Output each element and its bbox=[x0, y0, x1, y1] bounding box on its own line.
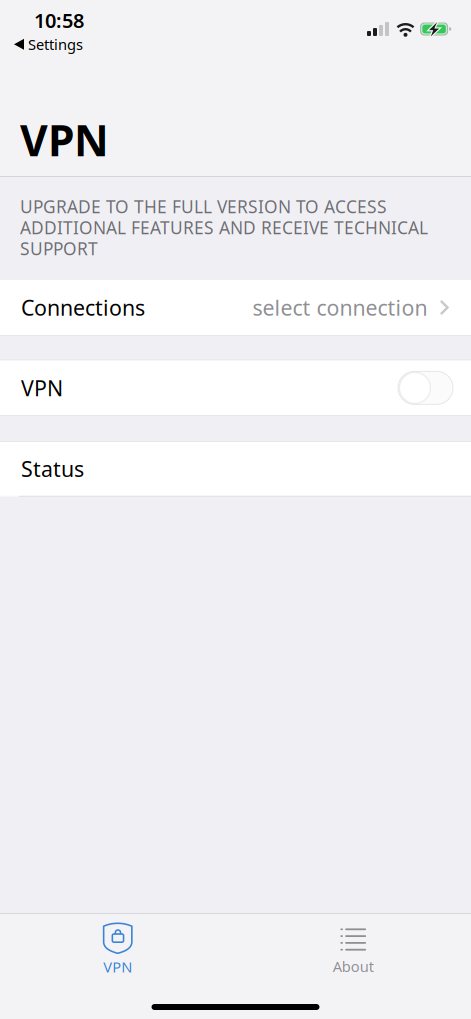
button[interactable]: Settings bbox=[0, 34, 83, 54]
staticText: 10:58 bbox=[34, 7, 84, 34]
staticText: About bbox=[333, 956, 374, 976]
staticText: Status bbox=[21, 455, 84, 483]
button[interactable]: About bbox=[235, 914, 471, 982]
button[interactable]: Connections bbox=[0, 280, 471, 335]
staticText: Settings bbox=[28, 35, 83, 54]
staticText: ADDITIONAL FEATURES AND RECEIVE TECHNICA… bbox=[20, 216, 428, 239]
staticText: VPN bbox=[21, 374, 63, 402]
staticText: VPN bbox=[103, 957, 132, 976]
button[interactable]: VPN bbox=[398, 371, 453, 404]
staticText: SUPPORT bbox=[20, 237, 98, 260]
staticText: Connections bbox=[21, 293, 145, 322]
staticText: VPN bbox=[20, 111, 109, 168]
staticText: select connection bbox=[252, 293, 427, 322]
staticText: UPGRADE TO THE FULL VERSION TO ACCESS bbox=[20, 195, 387, 218]
button[interactable]: VPN bbox=[0, 914, 235, 982]
